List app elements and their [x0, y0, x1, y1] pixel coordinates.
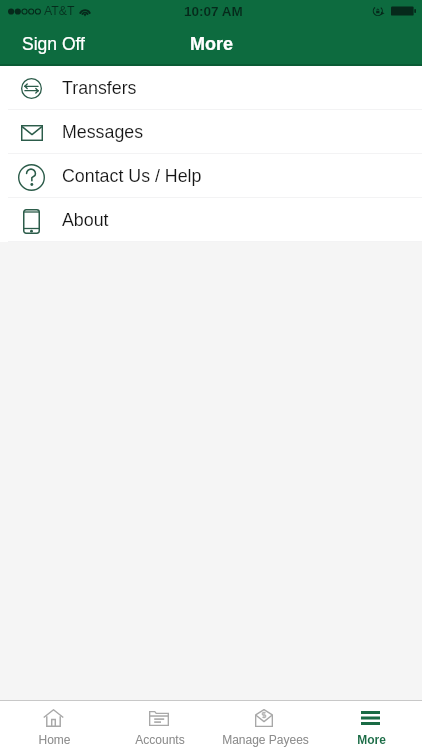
button[interactable]: Messages: [0, 110, 422, 154]
staticText: More: [190, 34, 234, 54]
button[interactable]: Sign Off: [0, 25, 99, 63]
button[interactable]: Transfers: [0, 66, 422, 110]
staticText: Contact Us / Help: [62, 166, 202, 186]
staticText: Messages: [62, 122, 144, 142]
staticText: Transfers: [62, 78, 137, 98]
staticText: Manage Payees: [222, 733, 309, 746]
staticText: Home: [38, 733, 71, 746]
button[interactable]: About: [0, 198, 422, 242]
button[interactable]: Home: [0, 701, 105, 750]
staticText: 10:07 AM: [184, 4, 243, 19]
staticText: Accounts: [135, 733, 185, 746]
button[interactable]: More: [316, 701, 422, 750]
staticText: More: [357, 733, 386, 746]
staticText: AT&T: [44, 4, 75, 18]
button[interactable]: Contact Us / Help: [0, 154, 422, 198]
button[interactable]: Accounts: [105, 701, 210, 750]
button[interactable]: Manage Payees: [210, 701, 316, 750]
staticText: Sign Off: [22, 34, 85, 54]
staticText: About: [62, 210, 109, 230]
